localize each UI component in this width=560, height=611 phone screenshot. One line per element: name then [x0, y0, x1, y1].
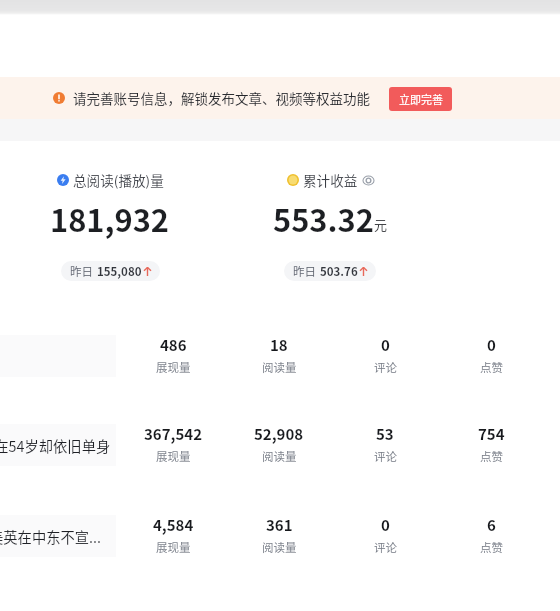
staticText: 立即完善	[399, 91, 443, 107]
staticText: 昨日	[70, 263, 93, 280]
staticText: 754	[478, 423, 505, 445]
button[interactable]: 昨日	[61, 261, 160, 281]
staticText: 点赞	[480, 448, 503, 465]
staticText: 52,908	[254, 423, 304, 445]
staticText: 评论	[374, 448, 397, 465]
staticText: 6	[487, 514, 496, 536]
staticText: 553.32	[273, 196, 374, 241]
staticText: 评论	[374, 359, 397, 376]
staticText: 点赞	[480, 539, 503, 556]
staticText: 展现量	[156, 448, 191, 465]
staticText: 阅读量	[262, 359, 297, 376]
staticText: 367,542	[144, 423, 202, 445]
staticText: 评论	[374, 539, 397, 556]
other: Toggle earnings visibility	[363, 176, 374, 185]
staticText: 486	[160, 334, 187, 356]
staticText: 点赞	[480, 359, 503, 376]
button[interactable]: 昨日	[284, 261, 376, 281]
staticText: 181,932	[50, 196, 170, 241]
staticText: 展现量	[156, 539, 191, 556]
staticText: 53	[376, 423, 394, 445]
staticText: 元	[374, 215, 388, 234]
staticText: 阅读量	[262, 448, 297, 465]
staticText: 155,080	[97, 263, 142, 280]
staticText: 0	[381, 514, 390, 536]
staticText: 总阅读(播放)量	[73, 170, 164, 190]
staticText: 请完善账号信息，解锁发布文章、视频等权益功能	[73, 88, 370, 108]
staticText: 美英在中东不宣...	[0, 526, 129, 547]
button[interactable]: 现在54岁却依旧单身	[0, 402, 560, 486]
staticText: 昨日	[293, 263, 316, 280]
staticText: 阅读量	[262, 539, 297, 556]
staticText: 现在54岁却依旧单身	[0, 435, 120, 456]
staticText: 展现量	[156, 359, 191, 376]
button[interactable]: 486	[0, 313, 560, 397]
staticText: 361	[266, 514, 293, 536]
staticText: 18	[270, 334, 288, 356]
staticText: 累计收益	[303, 170, 358, 190]
staticText: 0	[487, 334, 496, 356]
staticText: 0	[381, 334, 390, 356]
button[interactable]: 立即完善	[389, 87, 452, 111]
staticText: 4,584	[153, 514, 194, 536]
staticText: 503.76	[320, 263, 358, 280]
button[interactable]: 美英在中东不宣...	[0, 493, 560, 577]
